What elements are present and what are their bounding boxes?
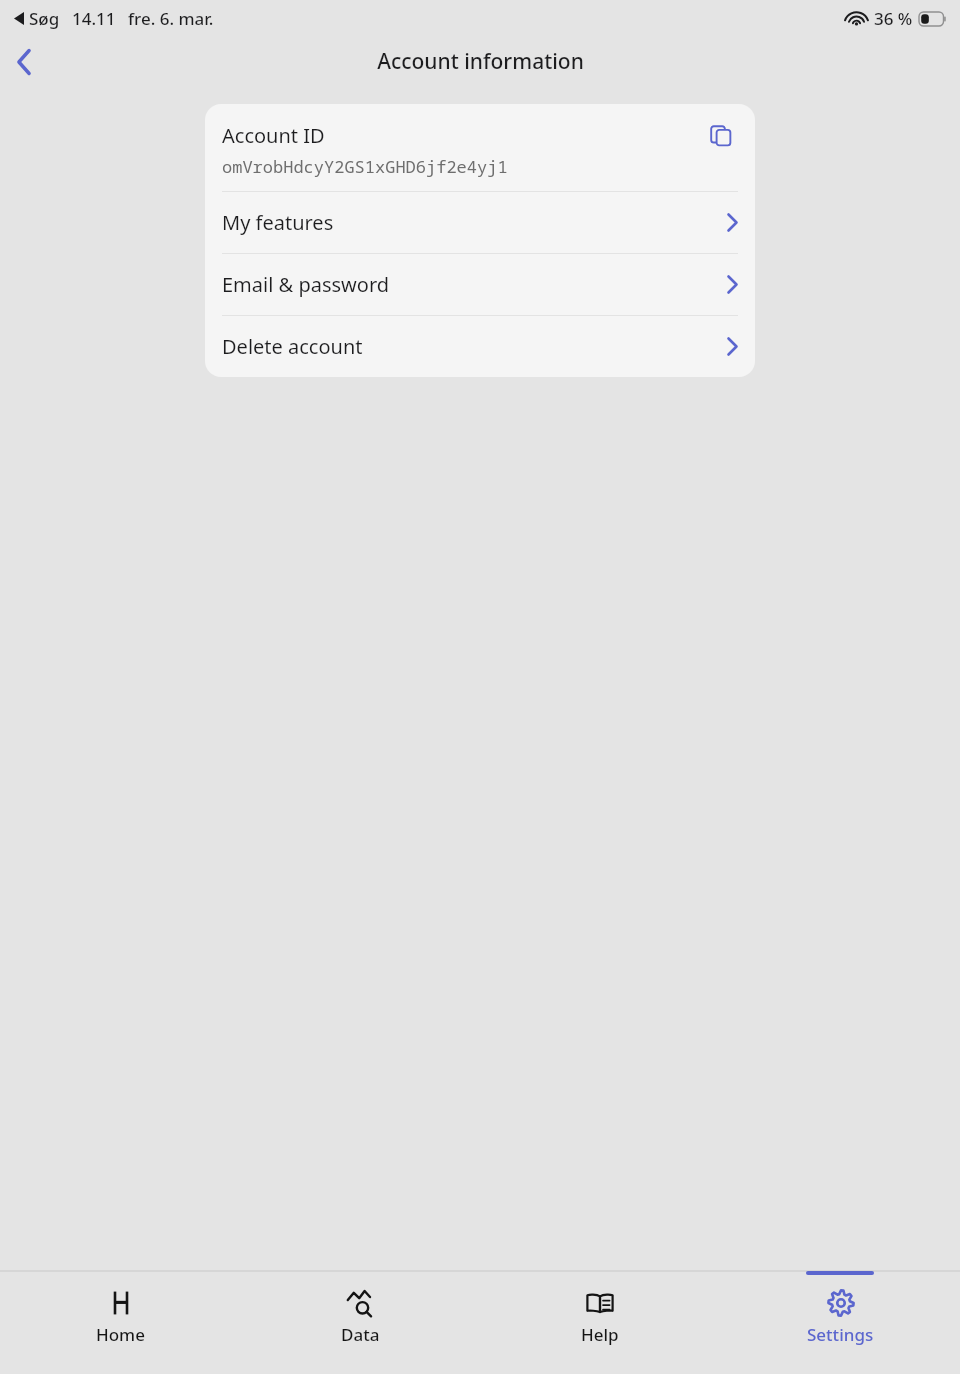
button[interactable]: Copy account ID	[699, 114, 743, 158]
staticText: Account information	[377, 47, 584, 76]
staticText: 14.11	[72, 7, 116, 30]
staticText: Help	[581, 1323, 619, 1346]
staticText: omVrobHdcyY2GS1xGHD6jf2e4yj1	[222, 155, 508, 178]
button[interactable]: Account ID	[205, 104, 755, 191]
staticText: Home	[96, 1323, 145, 1346]
staticText: 36 %	[874, 7, 913, 30]
staticText: Delete account	[222, 333, 363, 360]
staticText: My features	[222, 209, 334, 236]
button[interactable]: Back	[0, 36, 48, 88]
button[interactable]: Data	[240, 1270, 480, 1374]
staticText: fre. 6. mar.	[128, 7, 214, 30]
button[interactable]: Delete account	[205, 316, 755, 377]
staticText: Account ID	[222, 122, 325, 149]
button[interactable]: Settings	[720, 1270, 960, 1374]
staticText: Email & password	[222, 271, 390, 298]
button[interactable]: My features	[205, 192, 755, 253]
button[interactable]: Help	[480, 1270, 720, 1374]
staticText: Data	[341, 1323, 380, 1346]
staticText: Søg	[29, 7, 60, 30]
staticText: Settings	[807, 1323, 874, 1346]
button[interactable]: Home	[0, 1270, 240, 1374]
button[interactable]: Email & password	[205, 254, 755, 315]
